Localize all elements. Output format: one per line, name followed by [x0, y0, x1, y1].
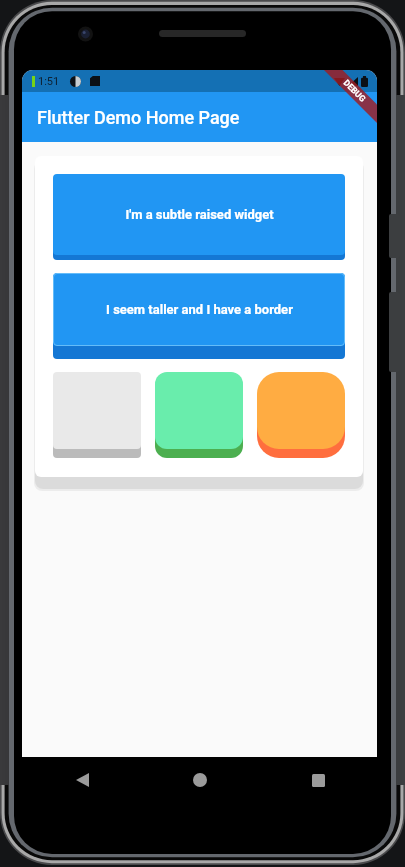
button[interactable]: Orange shape — [257, 372, 345, 449]
staticText: DEBUG — [342, 78, 368, 104]
button[interactable]: I seem taller and I have a border — [53, 273, 345, 346]
staticText: I'm a subtle raised widget — [125, 207, 274, 222]
button[interactable]: Home — [179, 759, 221, 801]
button[interactable]: Back — [61, 759, 103, 801]
button[interactable]: Recents — [297, 759, 339, 801]
staticText: Flutter Demo Home Page — [37, 107, 240, 128]
button[interactable]: Green shape — [155, 372, 243, 449]
button[interactable]: I'm a subtle raised widget — [53, 174, 345, 255]
staticText: 1:51 — [38, 75, 60, 88]
staticText: I seem taller and I have a border — [106, 302, 293, 317]
